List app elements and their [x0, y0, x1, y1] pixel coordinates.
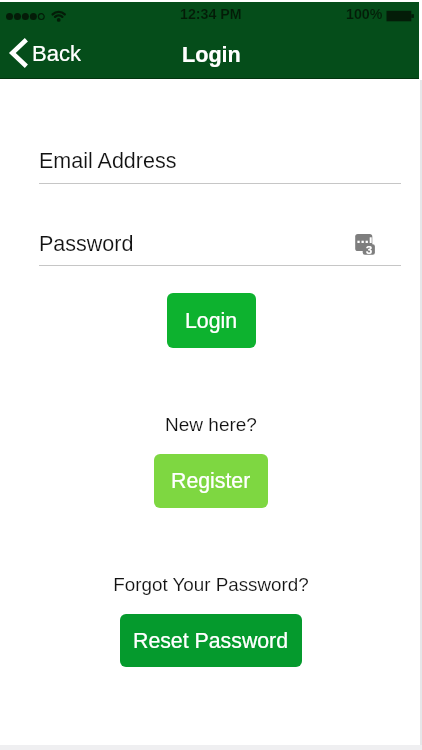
staticText: Email Address: [39, 149, 177, 173]
staticText: Password: [39, 232, 134, 256]
staticText: Login: [182, 42, 241, 66]
staticText: 12:34 PM: [180, 6, 242, 22]
button[interactable]: Saved passwords: [353, 232, 377, 256]
button[interactable]: Back: [0, 28, 95, 78]
staticText: Login: [185, 309, 238, 333]
staticText: 3: [366, 244, 373, 256]
staticText: New here?: [0, 414, 422, 435]
button[interactable]: Login: [167, 293, 256, 348]
staticText: Back: [32, 41, 81, 66]
staticText: Forgot Your Password?: [0, 574, 422, 595]
staticText: Reset Password: [133, 629, 289, 653]
button[interactable]: Reset Password: [120, 614, 302, 667]
button[interactable]: Register: [154, 454, 268, 508]
staticText: Register: [171, 469, 251, 493]
staticText: 100%: [346, 6, 383, 22]
